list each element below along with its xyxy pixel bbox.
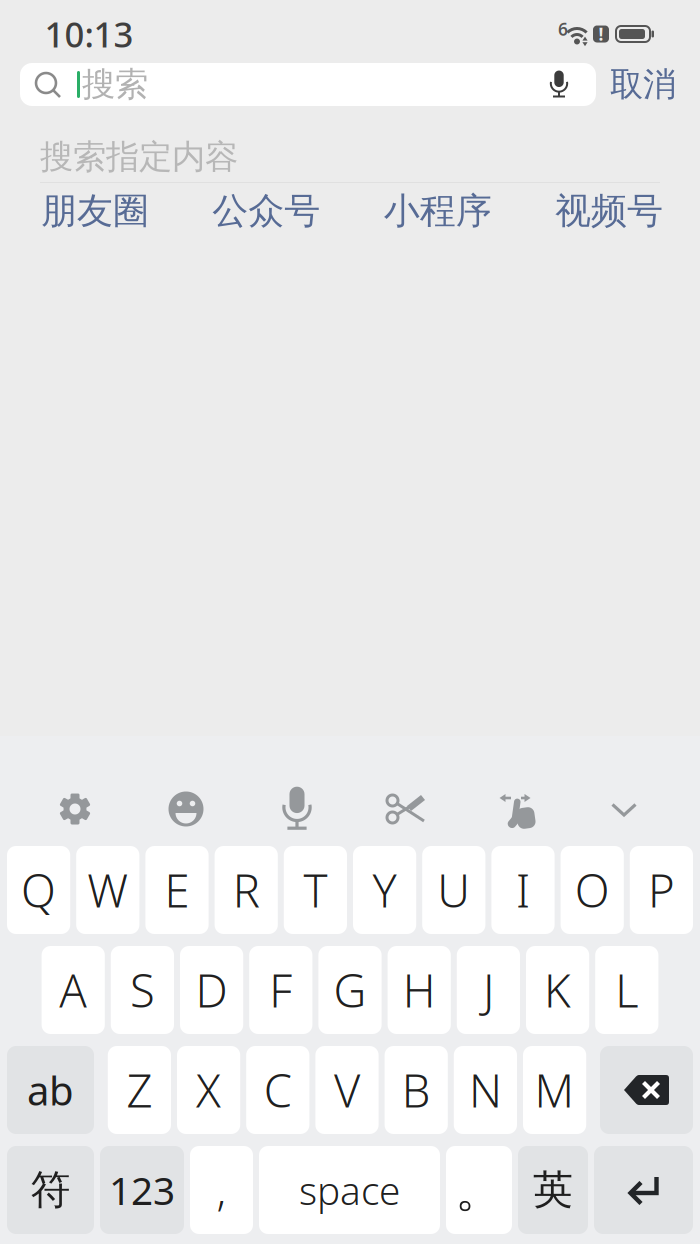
staticText: G <box>333 960 366 1020</box>
button[interactable] <box>279 788 315 830</box>
button[interactable]: 公众号 <box>212 189 320 233</box>
button[interactable] <box>600 1046 693 1134</box>
staticText: H <box>403 960 436 1020</box>
button[interactable]: W <box>76 846 139 934</box>
staticText: 符 <box>30 1165 70 1214</box>
button[interactable]: 。 <box>446 1146 512 1234</box>
button[interactable]: 搜索 <box>20 63 596 106</box>
staticText: 英 <box>533 1165 573 1214</box>
staticText: 10:13 <box>44 11 133 57</box>
staticText: S <box>130 960 155 1020</box>
button[interactable]: 符 <box>7 1146 94 1234</box>
staticText: ! <box>598 22 603 45</box>
button[interactable]: J <box>457 946 520 1034</box>
staticText: 朋友圈 <box>41 189 149 233</box>
button[interactable]: Y <box>353 846 416 934</box>
staticText: 123 <box>109 1164 175 1216</box>
staticText: 6 <box>558 17 568 40</box>
button[interactable]: O <box>561 846 624 934</box>
staticText: F <box>269 960 292 1020</box>
button[interactable]: 朋友圈 <box>41 189 149 233</box>
button[interactable]: H <box>388 946 451 1034</box>
staticText: Y <box>373 860 397 920</box>
button[interactable]: 视频号 <box>555 189 663 233</box>
staticText: Z <box>126 1060 152 1120</box>
staticText: 取消 <box>610 64 676 105</box>
button[interactable]: N <box>454 1046 517 1134</box>
button[interactable]: D <box>180 946 243 1034</box>
staticText: C <box>264 1060 292 1120</box>
staticText: 搜索指定内容 <box>40 136 238 177</box>
staticText: 小程序 <box>384 189 492 233</box>
staticText: X <box>196 1060 221 1120</box>
button[interactable]: 取消 <box>610 64 676 105</box>
staticText: I <box>516 860 530 920</box>
button[interactable]: T <box>284 846 347 934</box>
button[interactable]: C <box>246 1046 309 1134</box>
button[interactable]: Z <box>108 1046 171 1134</box>
button[interactable] <box>387 790 427 828</box>
button[interactable]: P <box>630 846 693 934</box>
button[interactable]: Q <box>7 846 70 934</box>
staticText: 。 <box>455 1160 503 1219</box>
staticText: J <box>483 960 494 1020</box>
staticText: , <box>216 1162 226 1218</box>
button[interactable]: E <box>145 846 209 934</box>
staticText: O <box>575 860 610 920</box>
staticText: M <box>535 1060 575 1120</box>
button[interactable]: 小程序 <box>384 189 492 233</box>
button[interactable]: 123 <box>100 1146 184 1234</box>
button[interactable] <box>499 786 539 838</box>
staticText: 视频号 <box>555 189 663 233</box>
staticText: B <box>402 1060 431 1120</box>
staticText: K <box>544 960 571 1020</box>
button[interactable]: U <box>422 846 485 934</box>
button[interactable]: space <box>259 1146 440 1234</box>
staticText: ab <box>27 1063 74 1116</box>
staticText: space <box>299 1164 400 1216</box>
staticText: U <box>437 860 470 920</box>
button[interactable]: R <box>215 846 278 934</box>
button[interactable]: X <box>177 1046 240 1134</box>
button[interactable]: A <box>42 946 105 1034</box>
staticText: P <box>648 860 675 920</box>
staticText: T <box>303 860 327 920</box>
button[interactable]: 搜索指定内容 <box>0 132 700 182</box>
button[interactable]: K <box>526 946 589 1034</box>
staticText: N <box>469 1060 502 1120</box>
button[interactable] <box>594 1146 693 1234</box>
button[interactable] <box>55 789 95 829</box>
button[interactable]: I <box>491 846 555 934</box>
staticText: 公众号 <box>212 189 320 233</box>
button[interactable]: G <box>318 946 382 1034</box>
button[interactable]: V <box>315 1046 379 1134</box>
button[interactable]: B <box>385 1046 448 1134</box>
button[interactable]: , <box>190 1146 253 1234</box>
staticText: E <box>164 860 189 920</box>
button[interactable]: F <box>249 946 312 1034</box>
staticText: R <box>233 860 260 920</box>
staticText: L <box>615 960 638 1020</box>
staticText: A <box>59 960 87 1020</box>
staticText: W <box>87 860 128 920</box>
button[interactable] <box>167 790 205 828</box>
button[interactable]: M <box>523 1046 586 1134</box>
button[interactable]: 英 <box>518 1146 588 1234</box>
button[interactable]: ab <box>7 1046 94 1134</box>
staticText: V <box>334 1060 360 1120</box>
button[interactable]: L <box>595 946 658 1034</box>
button[interactable]: S <box>111 946 174 1034</box>
staticText: D <box>196 960 228 1020</box>
staticText: 搜索 <box>82 64 148 105</box>
staticText: Q <box>21 860 56 920</box>
button[interactable] <box>610 802 637 817</box>
